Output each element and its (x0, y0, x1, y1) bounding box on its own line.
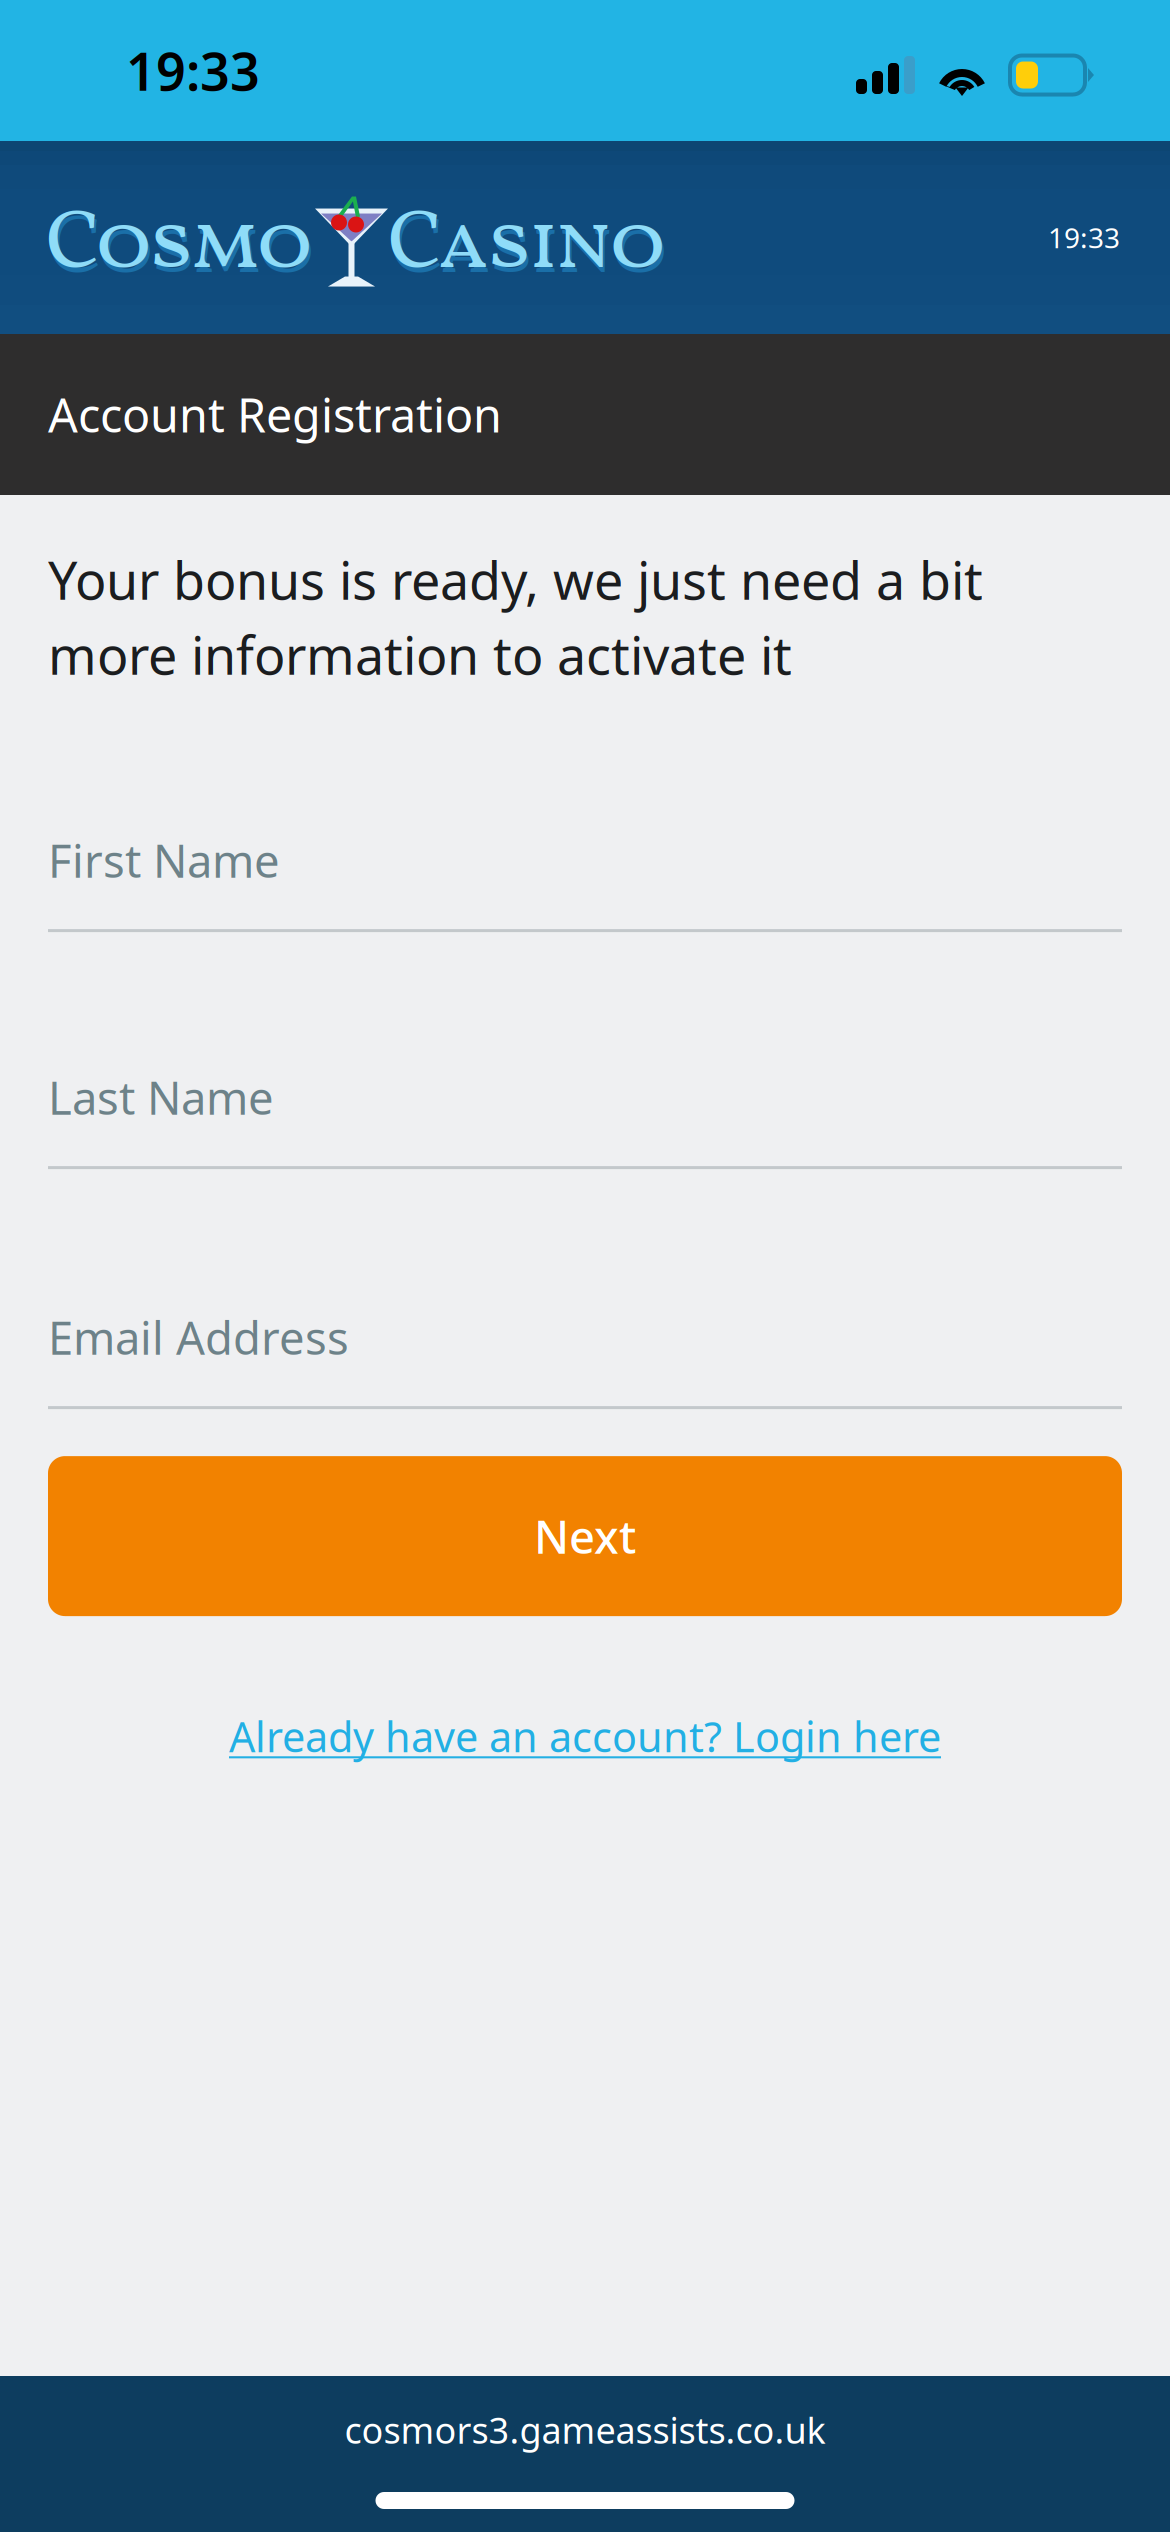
staticText: Account Registration (48, 383, 502, 445)
staticText: Casino (388, 188, 666, 304)
staticText: Your bonus is ready, we just need a bit (48, 545, 983, 614)
staticText: Cosmo (48, 193, 315, 309)
button[interactable]: Email Address (48, 1299, 1122, 1409)
staticText: Casino (390, 193, 668, 309)
staticText: Last Name (48, 1067, 274, 1127)
staticText: Next (534, 1506, 636, 1566)
staticText: First Name (48, 830, 280, 890)
button[interactable]: Next (48, 1456, 1122, 1616)
button[interactable]: First Name (48, 822, 1122, 932)
staticText: more information to activate it (48, 620, 792, 689)
button[interactable]: Last Name (48, 1059, 1122, 1169)
staticText: Cosmo (46, 188, 313, 304)
staticText: Email Address (48, 1307, 349, 1367)
staticText: cosmors3.gameassists.co.uk (344, 2406, 825, 2454)
staticText: 19:33 (1048, 219, 1120, 256)
button[interactable]: Already have an account? Login here (48, 1706, 1122, 1766)
staticText: 19:33 (126, 36, 260, 105)
staticText: Already have an account? Login here (229, 1709, 941, 1764)
